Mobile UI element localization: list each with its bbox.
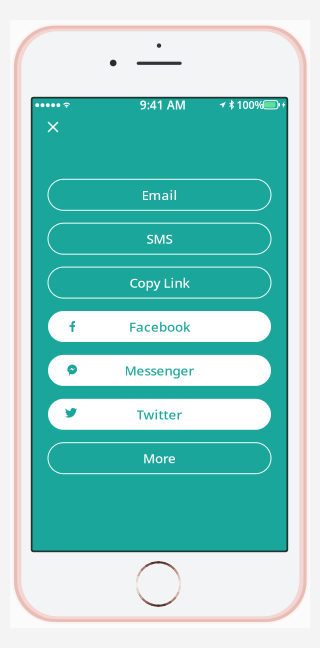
staticText: Email xyxy=(141,186,177,204)
button[interactable]: Messenger xyxy=(48,355,271,386)
staticText: SMS xyxy=(146,230,172,247)
button[interactable]: Twitter xyxy=(48,399,271,430)
staticText: More xyxy=(143,449,176,467)
staticText: Copy Link xyxy=(129,274,189,291)
button[interactable]: More xyxy=(48,443,271,474)
button[interactable]: SMS xyxy=(48,223,271,254)
button[interactable]: Facebook xyxy=(48,311,271,342)
button[interactable]: Copy Link xyxy=(48,267,271,298)
staticText: 9:41 AM xyxy=(140,97,186,113)
staticText: Facebook xyxy=(129,318,190,335)
staticText: 100% xyxy=(236,98,263,112)
button[interactable]: Close xyxy=(39,113,67,141)
staticText: Messenger xyxy=(124,361,194,379)
button[interactable]: Email xyxy=(48,179,271,210)
staticText: Twitter xyxy=(136,405,182,423)
